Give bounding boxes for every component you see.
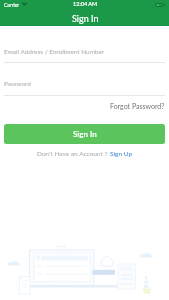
- other: Battery: [155, 3, 165, 7]
- button[interactable]: Sign Up: [110, 150, 133, 158]
- other: Wi-Fi: [21, 2, 28, 6]
- staticText: Password: [4, 80, 31, 88]
- staticText: Forgot Password?: [110, 102, 165, 110]
- button[interactable]: Forgot Password?: [100, 100, 165, 112]
- button[interactable]: Sign In: [4, 124, 165, 144]
- button[interactable]: Email Address / Enrollment Number: [4, 44, 165, 63]
- staticText: Email Address / Enrollment Number: [4, 48, 105, 56]
- button[interactable]: Password: [4, 76, 165, 96]
- staticText: Sign In: [72, 13, 99, 24]
- staticText: Sign In: [73, 129, 97, 139]
- staticText: 12:04 AM: [73, 1, 98, 8]
- staticText: Don't Have an Account ?: [37, 150, 110, 158]
- staticText: Carrier: [4, 2, 20, 8]
